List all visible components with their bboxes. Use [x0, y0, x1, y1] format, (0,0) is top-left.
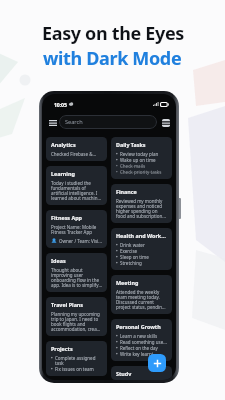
staticText: • [116, 151, 118, 157]
button[interactable]: Travel Plans [46, 297, 107, 336]
staticText: Fitness App [51, 214, 82, 221]
staticText: Stretching [120, 260, 142, 266]
staticText: Today i studied the fundamentals of arti… [51, 180, 102, 201]
staticText: Reflect on the day [120, 345, 158, 351]
staticText: Study [116, 370, 132, 376]
staticText: Complete assigned task [55, 355, 102, 366]
staticText: Search [65, 118, 83, 126]
button[interactable]: Personal Growth [111, 319, 172, 361]
button[interactable]: Finance [111, 184, 172, 223]
staticText: • [116, 260, 118, 266]
staticText: Analytics [51, 141, 76, 148]
staticText: Sleep on time [120, 254, 149, 260]
button[interactable]: Fitness App [46, 210, 107, 248]
staticText: Project Name: Mobile Fitness Tracker App [51, 224, 102, 235]
staticText: • [116, 248, 118, 254]
staticText: Learning [51, 170, 75, 177]
staticText: Personal Growth [116, 323, 161, 330]
staticText: Checked Firebase &... [51, 151, 97, 157]
button[interactable]: Grid view [160, 117, 171, 128]
button[interactable]: Search [59, 115, 157, 129]
staticText: Write key learni [120, 351, 153, 357]
staticText: Planning my upcoming trip to Japan. I ne… [51, 311, 102, 332]
staticText: Thought about improving user onboarding … [51, 267, 102, 288]
button[interactable]: Menu [47, 117, 58, 128]
staticText: Review today plan [120, 151, 159, 157]
staticText: • [51, 366, 53, 372]
staticText: • [51, 355, 53, 361]
staticText: with Dark Mode [43, 46, 182, 71]
staticText: Attended the weekly team meeting today. … [116, 289, 167, 310]
staticText: Check priority tasks [120, 169, 162, 175]
staticText: • [116, 333, 118, 339]
staticText: • [116, 254, 118, 260]
staticText: • [116, 242, 118, 248]
staticText: Exercise [120, 248, 138, 254]
staticText: Ideas [51, 257, 66, 264]
button[interactable]: Add note [148, 354, 166, 372]
staticText: Reviewed my monthly expenses and noticed… [116, 198, 167, 219]
staticText: Projects [51, 345, 73, 352]
staticText: Health and Worko... [116, 232, 167, 239]
staticText: Owner / Team: Visi... [59, 238, 102, 244]
staticText: • [116, 163, 118, 169]
staticText: • [116, 169, 118, 175]
staticText: Finance [116, 188, 137, 195]
button[interactable]: Ideas [46, 253, 107, 292]
staticText: Read something useful [120, 339, 167, 345]
staticText: • [116, 345, 118, 351]
staticText: • [116, 157, 118, 163]
staticText: Fix issues on team [55, 366, 94, 372]
staticText: • [116, 339, 118, 345]
staticText: 10:05 [54, 101, 67, 108]
button[interactable]: Health and Worko... [111, 228, 172, 270]
staticText: Check mails [120, 163, 146, 169]
button[interactable]: Projects [46, 341, 107, 376]
staticText: Drink water [120, 242, 145, 248]
button[interactable]: Learning [46, 166, 107, 205]
button[interactable]: Daily Tasks [111, 137, 172, 179]
staticText: Meeting [116, 279, 139, 286]
staticText: Easy on the Eyes [42, 21, 184, 46]
staticText: Learn a new skills [120, 333, 158, 339]
staticText: Travel Plans [51, 301, 84, 308]
button[interactable]: Meeting [111, 275, 172, 314]
staticText: • [116, 351, 118, 357]
staticText: Daily Tasks [116, 141, 146, 148]
button[interactable]: Analytics [46, 137, 107, 161]
button[interactable]: Study [111, 366, 172, 380]
staticText: Wake up on time [120, 157, 156, 163]
